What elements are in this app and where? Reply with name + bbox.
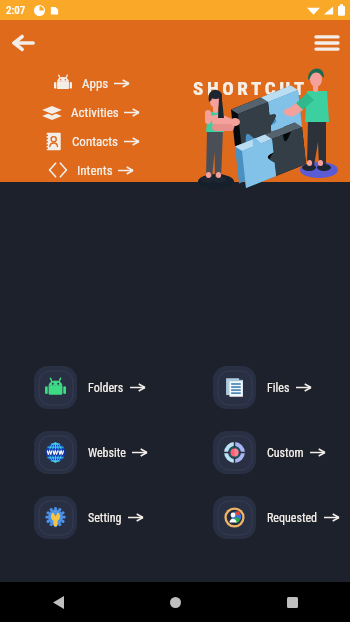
staticText: 2:07 xyxy=(6,4,26,17)
staticText: Setting xyxy=(88,511,122,525)
button[interactable]: Setting xyxy=(34,496,143,539)
button[interactable]: Apps xyxy=(52,72,129,94)
button[interactable]: Folders xyxy=(34,366,145,409)
staticText: Requested xyxy=(267,511,318,525)
staticText: Folders xyxy=(88,381,124,395)
staticText: Intents xyxy=(77,163,113,178)
staticText: Activities xyxy=(71,105,119,120)
button[interactable]: Recent apps xyxy=(272,582,312,622)
button[interactable]: Menu xyxy=(310,26,344,60)
staticText: Custom xyxy=(267,446,304,460)
staticText: Files xyxy=(267,381,290,395)
button[interactable]: Intents xyxy=(47,159,133,181)
button[interactable]: Back xyxy=(38,582,78,622)
staticText: Apps xyxy=(82,76,109,91)
staticText: Contacts xyxy=(72,134,119,149)
button[interactable]: Home xyxy=(155,582,195,622)
staticText: Website xyxy=(88,446,126,460)
button[interactable]: Custom xyxy=(213,431,325,474)
button[interactable]: Website xyxy=(34,431,147,474)
staticText: SHORTCUT xyxy=(193,77,308,99)
button[interactable]: Contacts xyxy=(42,130,139,152)
button[interactable]: Files xyxy=(213,366,311,409)
button[interactable]: Requested xyxy=(213,496,339,539)
button[interactable]: Activities xyxy=(41,101,139,123)
button[interactable]: Back xyxy=(6,26,40,60)
